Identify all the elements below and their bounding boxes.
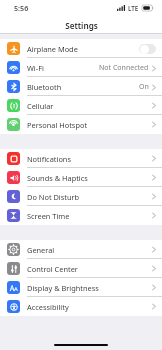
staticText: Screen Time <box>27 211 152 221</box>
staticText: Personal Hotspot <box>27 120 152 130</box>
staticText: LTE <box>128 4 139 12</box>
button[interactable]: General <box>0 240 162 259</box>
staticText: General <box>27 245 152 255</box>
button[interactable]: Display & Brightness <box>0 278 162 297</box>
staticText: Airplane Mode <box>27 44 139 54</box>
button[interactable]: Sounds & Haptics <box>0 168 162 187</box>
button[interactable]: Airplane Mode toggle <box>139 44 156 54</box>
button[interactable]: Control Center <box>0 259 162 278</box>
button[interactable]: Screen Time <box>0 206 162 225</box>
staticText: Cellular <box>27 101 152 111</box>
button[interactable]: Wi-Fi <box>0 58 162 77</box>
staticText: Accessibility <box>27 302 152 312</box>
button[interactable]: Notifications <box>0 149 162 168</box>
staticText: Settings <box>65 20 98 31</box>
button[interactable]: Airplane Mode <box>0 39 162 58</box>
button[interactable]: Do Not Disturb <box>0 187 162 206</box>
staticText: Not Connected <box>99 63 149 73</box>
staticText: Bluetooth <box>27 82 139 92</box>
button[interactable]: Cellular <box>0 96 162 115</box>
button[interactable]: Accessibility <box>0 297 162 316</box>
staticText: 5:56 <box>14 3 29 13</box>
staticText: Control Center <box>27 264 152 274</box>
staticText: Display & Brightness <box>27 283 152 293</box>
button[interactable]: Bluetooth <box>0 77 162 96</box>
staticText: On <box>139 82 149 92</box>
staticText: Wi-Fi <box>27 63 99 73</box>
button[interactable]: Personal Hotspot <box>0 115 162 134</box>
staticText: Notifications <box>27 154 152 164</box>
staticText: Sounds & Haptics <box>27 173 152 183</box>
staticText: Do Not Disturb <box>27 192 152 202</box>
